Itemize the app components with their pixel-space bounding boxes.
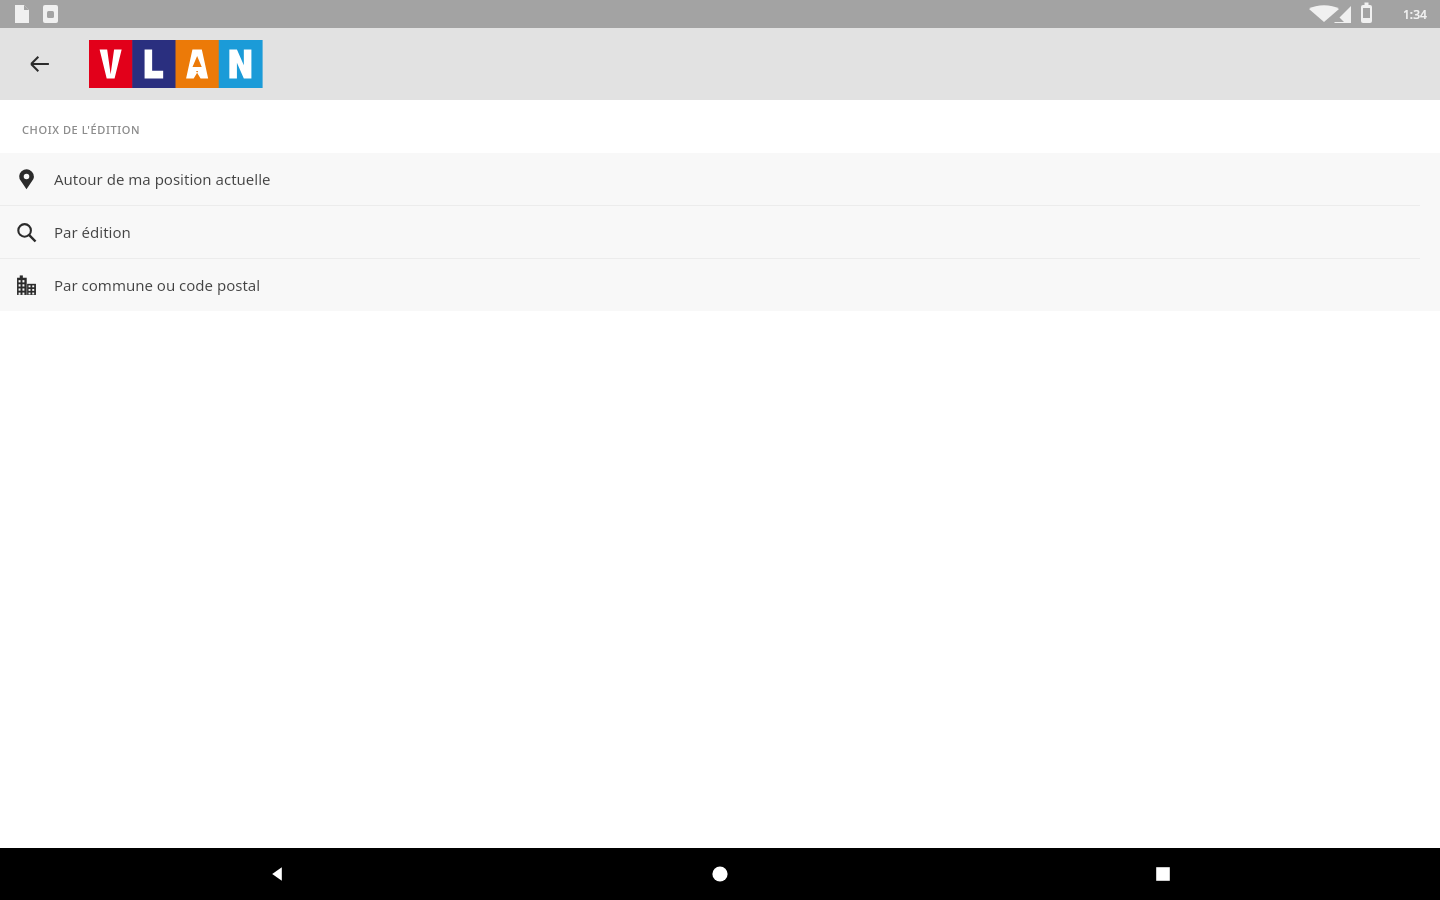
button[interactable]: Autour de ma position actuelle bbox=[0, 153, 1440, 205]
button[interactable]: Home bbox=[689, 848, 751, 900]
button[interactable]: VLAN bbox=[89, 40, 262, 88]
button[interactable]: Back bbox=[246, 848, 308, 900]
button[interactable]: Par édition bbox=[0, 206, 1440, 258]
button[interactable]: Back bbox=[14, 38, 66, 90]
staticText: Autour de ma position actuelle bbox=[54, 169, 271, 189]
staticText: 1:34 bbox=[1403, 6, 1427, 22]
staticText: Par commune ou code postal bbox=[54, 275, 261, 295]
button[interactable]: Recent apps bbox=[1132, 848, 1194, 900]
staticText: CHOIX DE L'ÉDITION bbox=[22, 122, 141, 137]
staticText: Par édition bbox=[54, 222, 131, 242]
button[interactable]: Par commune ou code postal bbox=[0, 259, 1440, 311]
